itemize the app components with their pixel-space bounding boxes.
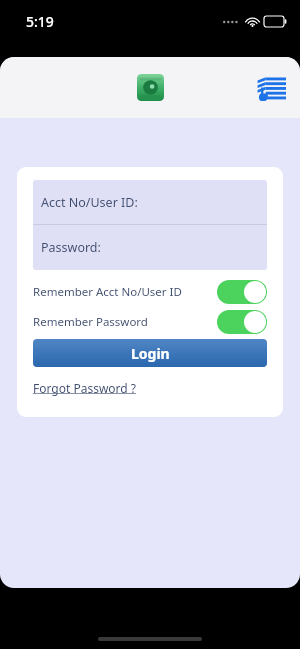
- staticText: Forgot Password ?: [33, 380, 137, 396]
- button[interactable]: Password:: [33, 225, 267, 270]
- button[interactable]: Remember Acct No/User ID: [33, 280, 267, 304]
- button[interactable]: Remember Password: [33, 310, 267, 334]
- button[interactable]: Forgot Password ?: [33, 380, 137, 396]
- staticText: Password:: [41, 239, 101, 256]
- button[interactable]: Menu: [256, 75, 286, 101]
- staticText: 5:19: [26, 12, 54, 31]
- button[interactable]: Acct No/User ID:: [33, 180, 267, 224]
- staticText: Login: [131, 344, 170, 363]
- button[interactable]: Login: [33, 339, 267, 367]
- staticText: Remember Acct No/User ID: [33, 284, 182, 300]
- button[interactable]: Company logo: [137, 74, 164, 101]
- staticText: Acct No/User ID:: [41, 194, 138, 211]
- staticText: Remember Password: [33, 314, 148, 330]
